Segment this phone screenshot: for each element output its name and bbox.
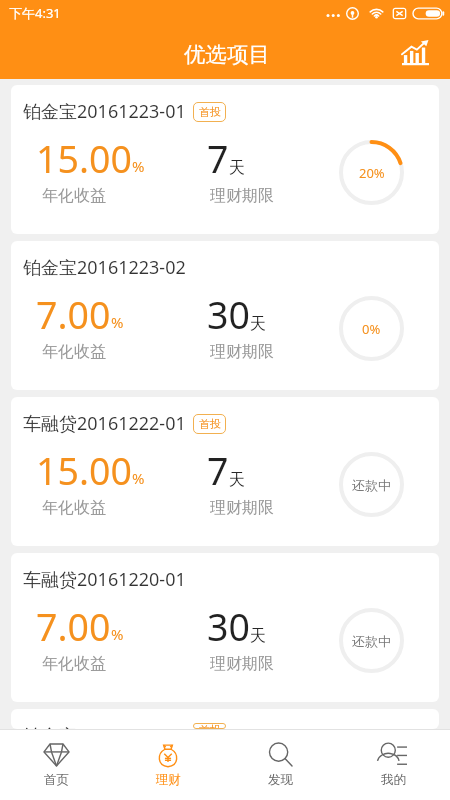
staticText: 还款中 (352, 477, 391, 493)
staticText: 理财期限 (210, 342, 274, 362)
button[interactable]: 首页 (0, 730, 112, 800)
staticText: 15.00 (36, 445, 132, 496)
staticText: 7.00 (36, 289, 111, 340)
staticText: 0% (362, 320, 381, 338)
staticText: 优选项目 (184, 41, 270, 68)
staticText: 15.00 (36, 133, 132, 184)
button[interactable]: 车融贷20161222-01 (11, 397, 439, 546)
staticText: 年化收益 (42, 498, 106, 518)
staticText: 7.00 (36, 601, 111, 652)
staticText: 30 (207, 289, 250, 340)
button[interactable]: 铂金宝20161223-01 (11, 85, 439, 234)
staticText: 年化收益 (42, 654, 106, 674)
staticText: 天 (229, 470, 245, 490)
staticText: 下午4:31 (9, 4, 61, 22)
staticText: 年化收益 (42, 342, 106, 362)
button[interactable]: 我的 (337, 730, 450, 800)
staticText: 30 (207, 601, 250, 652)
staticText: 车融贷20161220-01 (23, 567, 186, 592)
staticText: 发现 (268, 772, 293, 788)
staticText: 理财期限 (210, 654, 274, 674)
button[interactable]: 车融贷20161220-01 (11, 553, 439, 702)
staticText: 理财 (156, 772, 181, 788)
staticText: 20% (359, 164, 385, 182)
staticText: 我的 (381, 772, 406, 788)
staticText: 年化收益 (42, 186, 106, 206)
staticText: % (111, 624, 124, 644)
staticText: 理财期限 (210, 186, 274, 206)
staticText: 首投 (199, 723, 221, 729)
button[interactable]: Statistics (393, 31, 437, 75)
staticText: 铂金宝20161223-01 (23, 99, 186, 124)
button[interactable]: 理财 (112, 730, 224, 800)
button[interactable]: 铂金宝20161223-02 (11, 241, 439, 390)
button[interactable]: 发现 (224, 730, 337, 800)
staticText: 首投 (199, 105, 221, 119)
staticText: 铂金宝20161216-01 (23, 723, 186, 729)
staticText: 天 (250, 314, 266, 334)
staticText: 首页 (44, 772, 69, 788)
staticText: 铂金宝20161223-02 (23, 255, 186, 280)
staticText: 理财期限 (210, 498, 274, 518)
button[interactable]: 铂金宝20161216-01 (11, 709, 439, 729)
staticText: 还款中 (352, 633, 391, 649)
staticText: 车融贷20161222-01 (23, 411, 186, 436)
staticText: % (132, 156, 145, 176)
staticText: % (111, 312, 124, 332)
staticText: 天 (250, 626, 266, 646)
staticText: % (132, 468, 145, 488)
staticText: 首投 (199, 417, 221, 431)
staticText: 天 (229, 158, 245, 178)
staticText: 7 (207, 445, 229, 496)
staticText: 7 (207, 133, 229, 184)
